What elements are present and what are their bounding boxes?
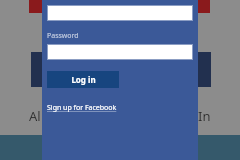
staticText: Password (47, 31, 79, 41)
staticText: Sign up for Facebook (47, 103, 117, 113)
staticText: Al (29, 107, 41, 125)
staticText: Log in (71, 74, 96, 85)
button[interactable] (47, 44, 193, 60)
button[interactable]: Sign up for Facebook (47, 103, 117, 113)
button[interactable]: Log in (47, 71, 119, 88)
button[interactable] (47, 5, 193, 21)
staticText: In (198, 107, 211, 125)
